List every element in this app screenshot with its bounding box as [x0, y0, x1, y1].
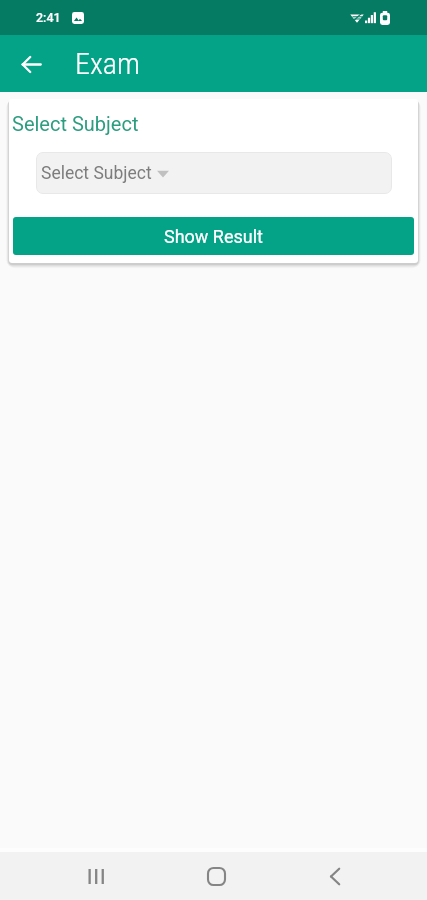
- button[interactable]: Back: [10, 43, 52, 85]
- button[interactable]: Back: [307, 852, 363, 900]
- button[interactable]: Home: [188, 852, 244, 900]
- staticText: Show Result: [164, 226, 263, 247]
- button[interactable]: Select Subject: [36, 152, 392, 194]
- staticText: 2:41: [36, 10, 61, 25]
- button[interactable]: Recent apps: [68, 852, 124, 900]
- staticText: Select Subject: [12, 112, 139, 135]
- staticText: Select Subject: [41, 163, 152, 184]
- staticText: Exam: [75, 46, 140, 81]
- button[interactable]: Show Result: [13, 217, 414, 255]
